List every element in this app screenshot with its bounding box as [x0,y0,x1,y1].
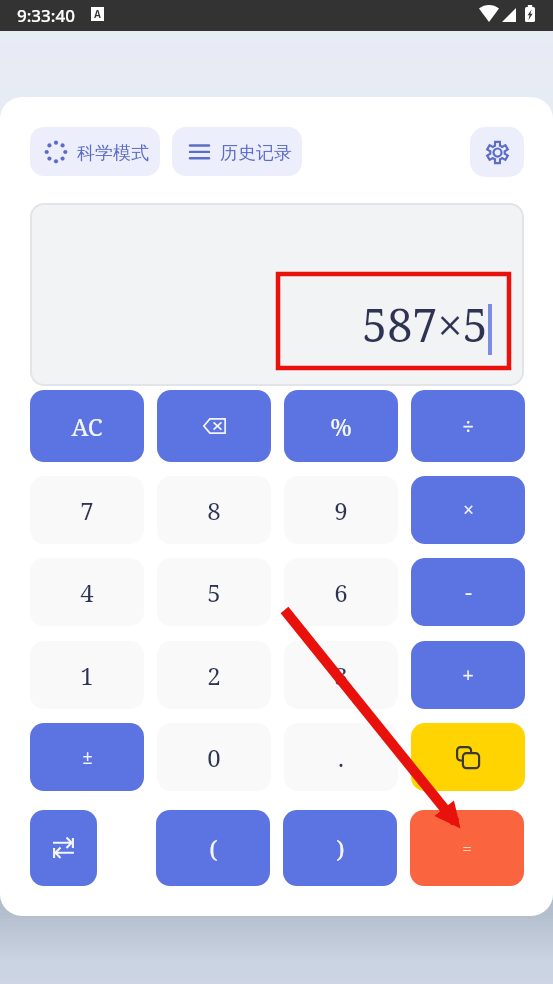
staticText: ( [209,832,218,865]
button[interactable]: 3 [284,641,398,709]
staticText: 3 [334,659,348,692]
staticText: 8 [207,494,221,527]
staticText: ± [82,744,93,770]
staticText: 2 [207,659,221,692]
staticText: ) [336,832,345,865]
staticText: 科学模式 [77,142,149,165]
staticText: = [462,837,472,860]
button[interactable]: 1 [30,641,144,709]
button[interactable]: 8 [157,476,271,544]
button[interactable]: ) [283,810,397,886]
button[interactable]: % [284,390,398,462]
button[interactable]: 5 [157,558,271,626]
staticText: 4 [80,576,94,609]
button[interactable]: . [284,723,398,791]
button[interactable]: ( [156,810,270,886]
button[interactable]: 6 [284,558,398,626]
staticText: 587×5 [362,294,488,355]
staticText: . [338,741,344,774]
button[interactable]: Unit converter [30,810,97,886]
button[interactable]: Copy result [411,723,525,791]
button[interactable]: 科学模式 [30,127,160,176]
button[interactable]: ± [30,723,144,791]
staticText: × [463,497,474,523]
button[interactable]: ÷ [411,390,525,462]
staticText: + [462,661,474,690]
staticText: 0 [207,741,221,774]
staticText: 1 [80,659,94,692]
staticText: 9:33:40 [17,4,75,27]
staticText: 5 [207,576,221,609]
button[interactable]: 0 [157,723,271,791]
button[interactable]: 9 [284,476,398,544]
staticText: ÷ [462,412,474,441]
button[interactable]: 4 [30,558,144,626]
staticText: % [330,410,352,443]
staticText: 6 [334,576,348,609]
button[interactable]: × [411,476,525,544]
button[interactable]: - [411,558,525,626]
button[interactable]: Backspace [157,390,271,462]
button[interactable]: = [410,810,524,886]
button[interactable]: AC [30,390,144,462]
staticText: A [94,7,101,21]
staticText: AC [71,410,103,443]
button[interactable]: + [411,641,525,709]
staticText: - [465,578,472,607]
button[interactable]: Settings [470,127,524,177]
staticText: 9 [334,494,348,527]
button[interactable]: 2 [157,641,271,709]
button[interactable]: 历史记录 [172,127,302,176]
button[interactable]: 7 [30,476,144,544]
staticText: 历史记录 [220,142,292,165]
staticText: 7 [80,494,94,527]
